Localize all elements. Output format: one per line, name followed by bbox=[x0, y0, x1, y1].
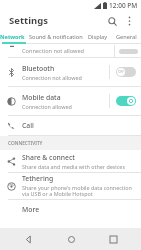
button[interactable]: General bbox=[111, 30, 141, 44]
staticText: OFF bbox=[118, 70, 124, 74]
staticText: More bbox=[22, 205, 40, 214]
staticText: CONNECTIVITY bbox=[8, 140, 43, 147]
button[interactable]: More options bbox=[121, 13, 137, 29]
staticText: Call bbox=[22, 121, 34, 130]
button[interactable]: Recents bbox=[98, 228, 128, 250]
staticText: Settings bbox=[9, 14, 48, 27]
button[interactable]: Display bbox=[85, 30, 111, 44]
button[interactable]: Mobile data toggle bbox=[110, 87, 141, 115]
button[interactable]: Tethering bbox=[0, 173, 141, 199]
staticText: Connection allowed bbox=[22, 103, 72, 110]
button[interactable]: Share & connect bbox=[0, 150, 141, 172]
button[interactable]: Connection not allowed bbox=[0, 44, 141, 58]
staticText: Sound & notification bbox=[29, 33, 83, 41]
button[interactable]: Sound & notification bbox=[27, 30, 85, 44]
staticText: Bluetooth bbox=[22, 64, 55, 73]
button[interactable]: Home bbox=[56, 228, 86, 250]
button[interactable]: More bbox=[0, 200, 141, 219]
staticText: Mobile data bbox=[22, 93, 61, 102]
staticText: Display bbox=[88, 33, 108, 41]
staticText: 12:00 PM bbox=[109, 1, 138, 10]
button[interactable]: Call bbox=[0, 116, 141, 135]
staticText: General bbox=[116, 33, 137, 41]
button[interactable]: Bluetooth toggle bbox=[110, 58, 141, 86]
staticText: Connection not allowed bbox=[22, 47, 85, 55]
button[interactable]: Search bbox=[103, 12, 121, 30]
staticText: Share data and media with other devices bbox=[22, 163, 125, 170]
staticText: Networks bbox=[0, 33, 27, 41]
staticText: Share & connect bbox=[22, 153, 75, 162]
staticText: Connection not allowed bbox=[22, 74, 82, 81]
button[interactable]: Mobile data bbox=[0, 87, 141, 115]
staticText: Share your phone's mobile data connectio… bbox=[22, 184, 135, 198]
button[interactable]: Back bbox=[13, 228, 43, 250]
button[interactable]: Bluetooth bbox=[0, 58, 141, 86]
button[interactable]: Networks bbox=[0, 30, 27, 44]
staticText: Tethering bbox=[22, 174, 54, 183]
